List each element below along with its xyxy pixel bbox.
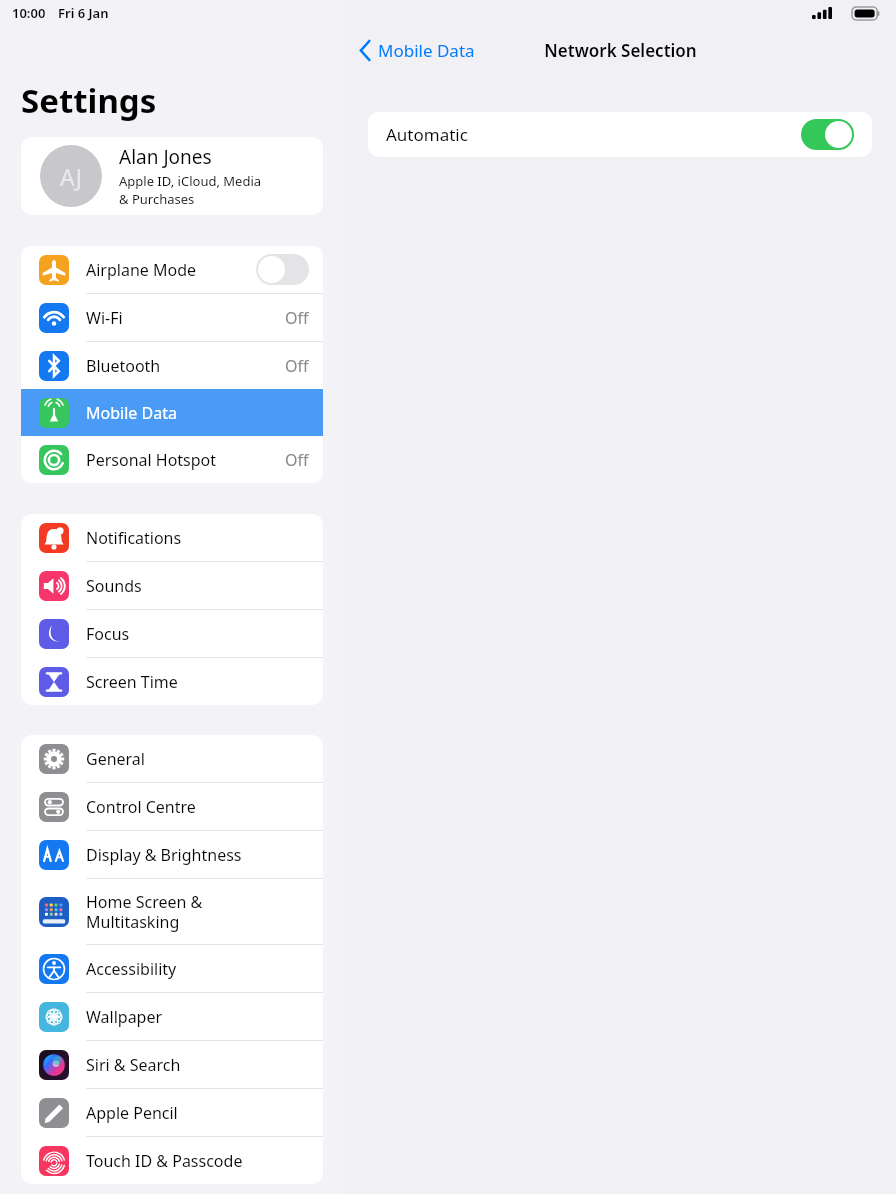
button[interactable]: Wallpaper (21, 993, 323, 1040)
staticText: Off (285, 355, 309, 377)
staticText: Wi-Fi (86, 307, 285, 329)
staticText: Off (285, 449, 309, 471)
button[interactable]: Sounds (21, 562, 323, 609)
staticText: AJ (60, 161, 83, 192)
staticText: Touch ID & Passcode (86, 1150, 309, 1172)
staticText: Apple ID, iCloud, Media (119, 172, 262, 190)
staticText: Alan Jones (119, 144, 212, 170)
staticText: Wallpaper (86, 1006, 309, 1028)
button[interactable]: Off (256, 254, 309, 285)
staticText: Network Selection (544, 39, 697, 62)
staticText: Bluetooth (86, 355, 285, 377)
button[interactable]: Wi-Fi (21, 294, 323, 341)
staticText: Automatic (386, 123, 801, 146)
button[interactable]: Touch ID & Passcode (21, 1137, 323, 1184)
staticText: Off (285, 307, 309, 329)
staticText: General (86, 748, 309, 770)
staticText: Fri 6 Jan (58, 4, 109, 22)
staticText: Screen Time (86, 671, 309, 693)
button[interactable]: Apple Pencil (21, 1089, 323, 1136)
button[interactable]: Bluetooth (21, 342, 323, 389)
button[interactable]: General (21, 735, 323, 782)
staticText: Apple Pencil (86, 1102, 309, 1124)
button[interactable]: Notifications (21, 514, 323, 561)
button[interactable]: Accessibility (21, 945, 323, 992)
button[interactable]: Mobile Data (354, 35, 481, 66)
staticText: 10:00 (12, 4, 46, 22)
button[interactable]: Airplane Mode (21, 246, 323, 293)
staticText: Personal Hotspot (86, 449, 285, 471)
staticText: Sounds (86, 575, 309, 597)
staticText: Home Screen & Multitasking (86, 891, 309, 932)
button[interactable]: Mobile Data (21, 389, 323, 436)
button[interactable]: On (801, 119, 854, 150)
staticText: Siri & Search (86, 1054, 309, 1076)
button[interactable]: Personal Hotspot (21, 436, 323, 483)
staticText: Display & Brightness (86, 844, 309, 866)
staticText: Mobile Data (86, 402, 309, 424)
staticText: Airplane Mode (86, 259, 256, 281)
staticText: Focus (86, 623, 309, 645)
button[interactable]: Display & Brightness (21, 831, 323, 878)
staticText: Notifications (86, 527, 309, 549)
staticText: & Purchases (119, 190, 195, 208)
button[interactable]: Control Centre (21, 783, 323, 830)
staticText: Accessibility (86, 958, 309, 980)
button[interactable]: AJ (21, 137, 323, 215)
button[interactable]: Home Screen & Multitasking (21, 879, 323, 944)
button[interactable]: Siri & Search (21, 1041, 323, 1088)
button[interactable]: Focus (21, 610, 323, 657)
staticText: Settings (21, 78, 157, 123)
button[interactable]: Screen Time (21, 658, 323, 705)
staticText: Mobile Data (378, 39, 475, 62)
button[interactable]: Automatic (368, 112, 872, 157)
staticText: Control Centre (86, 796, 309, 818)
